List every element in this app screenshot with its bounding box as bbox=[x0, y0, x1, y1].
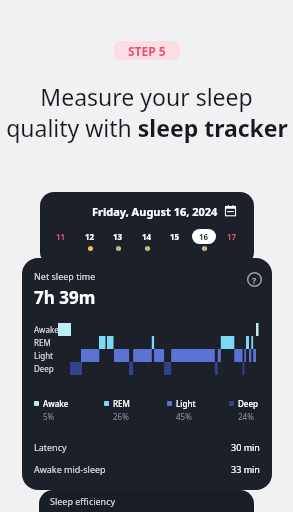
staticText: quality with sleep tracker bbox=[6, 112, 288, 143]
staticText: 26% bbox=[113, 411, 129, 422]
staticText: Light bbox=[176, 398, 196, 409]
button[interactable]: STEP 5 bbox=[114, 41, 180, 60]
staticText: 16 bbox=[199, 231, 209, 242]
staticText: STEP 5 bbox=[128, 43, 166, 59]
button[interactable]: 15 bbox=[161, 229, 189, 251]
staticText: Awake mid-sleep bbox=[34, 463, 106, 475]
staticText: 5% bbox=[43, 411, 55, 422]
button[interactable]: 17 bbox=[218, 229, 246, 251]
staticText: Light bbox=[34, 350, 54, 361]
button[interactable]: Latency bbox=[34, 441, 260, 453]
button[interactable]: 11 bbox=[47, 229, 75, 251]
button[interactable]: Sleep efficiency bbox=[39, 490, 254, 512]
staticText: REM bbox=[34, 337, 51, 348]
button[interactable]: Help bbox=[247, 272, 262, 287]
staticText: Friday, August 16, 2024 bbox=[92, 204, 218, 219]
button[interactable]: 16 bbox=[190, 229, 218, 251]
staticText: 24% bbox=[238, 411, 254, 422]
staticText: Awake bbox=[43, 398, 69, 409]
staticText: 11 bbox=[56, 231, 66, 242]
staticText: Measure your sleep bbox=[40, 81, 253, 112]
staticText: 30 min bbox=[231, 441, 260, 453]
staticText: 7h 39m bbox=[34, 286, 96, 309]
button[interactable]: Awake mid-sleep bbox=[34, 463, 260, 475]
staticText: Awake bbox=[34, 324, 59, 335]
staticText: REM bbox=[113, 398, 130, 409]
button[interactable]: 12 bbox=[76, 229, 104, 251]
button[interactable]: 13 bbox=[104, 229, 132, 251]
staticText: Deep bbox=[34, 363, 54, 374]
button[interactable]: 14 bbox=[133, 229, 161, 251]
staticText: 33 min bbox=[231, 463, 260, 475]
staticText: 15 bbox=[170, 231, 180, 242]
staticText: Latency bbox=[34, 441, 67, 453]
staticText: 13 bbox=[113, 231, 123, 242]
staticText: 17 bbox=[227, 231, 237, 242]
staticText: 45% bbox=[176, 411, 192, 422]
staticText: Sleep efficiency bbox=[50, 495, 116, 507]
staticText: Deep bbox=[238, 398, 258, 409]
staticText: ? bbox=[252, 274, 257, 286]
staticText: Net sleep time bbox=[34, 270, 96, 282]
staticText: 14 bbox=[142, 231, 152, 242]
button[interactable]: Open calendar bbox=[225, 205, 236, 216]
staticText: 12 bbox=[85, 231, 95, 242]
